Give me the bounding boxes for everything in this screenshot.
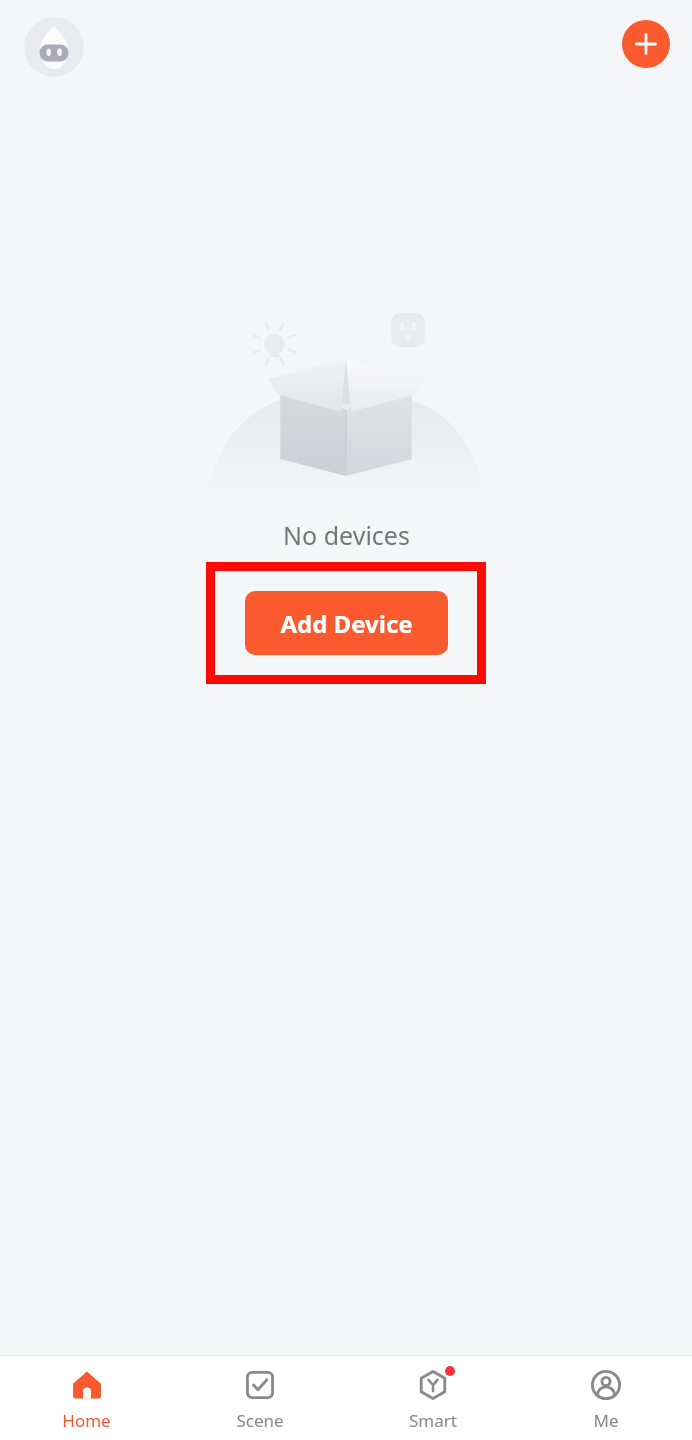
staticText: Smart [409, 1409, 457, 1432]
button[interactable]: Add Device [245, 591, 448, 655]
button[interactable]: Smart [346, 1356, 519, 1440]
button[interactable]: Scene [173, 1356, 346, 1440]
staticText: Add Device [280, 607, 413, 640]
button[interactable]: Add [622, 20, 670, 68]
staticText: No devices [283, 518, 410, 552]
staticText: Scene [236, 1409, 284, 1432]
staticText: Me [593, 1409, 619, 1432]
button[interactable]: Profile [24, 17, 84, 77]
button[interactable]: Home [0, 1356, 173, 1440]
button[interactable]: Me [519, 1356, 692, 1440]
staticText: Home [62, 1409, 111, 1432]
